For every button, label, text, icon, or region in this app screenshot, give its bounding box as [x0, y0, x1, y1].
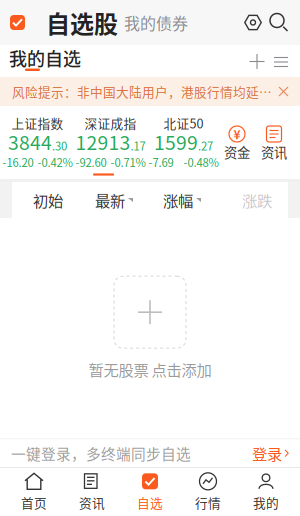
button[interactable]: 深证成指 — [74, 114, 147, 170]
staticText: 资金 — [224, 142, 250, 162]
staticText: 自选 — [137, 493, 163, 512]
button[interactable]: Add — [245, 47, 269, 75]
staticText: 资讯 — [261, 142, 287, 162]
button[interactable]: 上证指数 — [1, 114, 74, 170]
staticText: 涨幅 — [163, 189, 193, 211]
button[interactable]: Settings — [240, 4, 266, 40]
staticText: -0.42% — [37, 154, 72, 170]
staticText: .27 — [198, 137, 213, 154]
staticText: 自选股 — [46, 5, 118, 40]
staticText: -0.71% — [110, 154, 145, 170]
staticText: 登录 — [252, 442, 282, 464]
staticText: 我的债券 — [124, 11, 188, 34]
staticText: 3844 — [8, 127, 52, 155]
staticText: 上证指数 — [11, 114, 63, 132]
button[interactable]: 涨跌 — [242, 182, 284, 218]
button[interactable]: 自选 — [121, 470, 179, 514]
staticText: 风险提示：非中国大陆用户，港股行情均延时15分钟展示 — [12, 82, 277, 101]
button[interactable]: 一键登录，多终端同步自选 — [0, 439, 300, 467]
button[interactable]: ¥ — [221, 123, 253, 161]
staticText: 深证成指 — [84, 114, 136, 132]
button[interactable]: Search — [266, 4, 292, 40]
button[interactable]: 涨幅 — [163, 182, 242, 218]
staticText: 12913 — [75, 127, 130, 155]
button[interactable]: 最新 — [95, 182, 163, 218]
staticText: 初始 — [33, 189, 63, 211]
button[interactable]: 我的自选 — [9, 47, 89, 77]
button[interactable]: 初始 — [33, 182, 95, 218]
staticText: 一键登录，多终端同步自选 — [11, 443, 191, 464]
staticText: 我的自选 — [9, 45, 81, 71]
button[interactable]: 首页 — [5, 470, 63, 514]
button[interactable]: 资讯 — [258, 123, 290, 161]
button[interactable]: Close — [279, 87, 288, 96]
staticText: 北证50 — [163, 114, 203, 132]
button[interactable]: 资讯 — [63, 470, 121, 514]
staticText: -0.48% — [183, 154, 218, 170]
staticText: 1599 — [154, 127, 198, 155]
staticText: ¥ — [233, 125, 240, 143]
staticText: -16.20 — [2, 154, 33, 170]
button[interactable]: 我的 — [237, 470, 295, 514]
staticText: 最新 — [95, 189, 125, 211]
staticText: -92.60 — [75, 154, 106, 170]
staticText: 我的 — [253, 493, 279, 512]
button[interactable] — [114, 276, 186, 348]
staticText: .17 — [130, 137, 145, 154]
staticText: 资讯 — [79, 493, 105, 512]
staticText: 涨跌 — [242, 189, 272, 211]
staticText: 暂无股票 点击添加 — [88, 358, 211, 380]
staticText: 首页 — [21, 493, 47, 512]
staticText: 行情 — [195, 493, 221, 512]
staticText: -7.69 — [148, 154, 173, 170]
button[interactable]: 行情 — [179, 470, 237, 514]
button[interactable]: 北证50 — [147, 114, 220, 170]
staticText: .30 — [52, 137, 67, 154]
button[interactable]: Menu — [269, 47, 293, 75]
